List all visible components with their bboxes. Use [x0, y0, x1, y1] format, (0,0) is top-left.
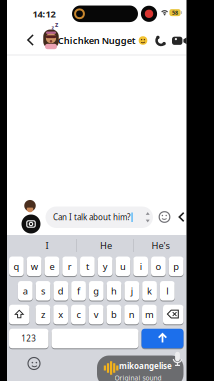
button[interactable]: He	[86, 236, 126, 254]
button[interactable]: x	[53, 304, 68, 325]
staticText: y	[103, 260, 108, 272]
button[interactable]	[27, 357, 40, 370]
staticText: g	[93, 285, 99, 297]
button[interactable]: c	[71, 304, 86, 325]
button[interactable]	[171, 352, 184, 367]
staticText: Can I talk about him?	[53, 212, 130, 222]
button[interactable]	[172, 33, 188, 49]
button[interactable]	[174, 210, 188, 224]
staticText: mikoangelise	[119, 361, 172, 371]
staticText: n	[129, 308, 135, 321]
staticText: r	[68, 260, 72, 272]
staticText: 58	[172, 9, 178, 16]
button[interactable]: q	[9, 256, 24, 277]
button[interactable]: y	[98, 256, 113, 277]
staticText: Chichken Nugget	[58, 34, 136, 47]
button[interactable]	[22, 215, 40, 233]
button[interactable]: He's	[140, 236, 180, 254]
button[interactable]: r	[62, 256, 77, 277]
staticText: z	[51, 24, 54, 31]
button[interactable]: o	[151, 256, 166, 277]
staticText: He's	[151, 239, 169, 252]
staticText: t	[86, 260, 89, 272]
staticText: u	[120, 260, 126, 272]
button[interactable]	[141, 328, 183, 349]
staticText: v	[94, 308, 99, 321]
button[interactable]: h	[107, 281, 121, 301]
button[interactable]	[158, 210, 171, 223]
staticText: f	[77, 285, 80, 297]
staticText: j	[131, 285, 133, 297]
button[interactable]: Chichken Nugget	[58, 32, 147, 48]
staticText: d	[58, 285, 64, 297]
button[interactable]: Can I talk about him?	[45, 206, 153, 228]
button[interactable]	[9, 304, 29, 325]
staticText: I	[45, 239, 48, 252]
button[interactable]: w	[27, 256, 42, 277]
staticText: a	[23, 285, 28, 297]
button[interactable]: j	[124, 281, 139, 301]
staticText: h	[111, 285, 117, 297]
staticText: l	[166, 285, 168, 297]
button[interactable]: f	[71, 281, 86, 301]
staticText: m	[145, 308, 154, 321]
button[interactable]: p	[169, 256, 184, 277]
button[interactable]: t	[80, 256, 95, 277]
staticText: i	[140, 260, 142, 272]
staticText: z	[41, 308, 45, 321]
button[interactable]: i	[133, 256, 148, 277]
button[interactable]	[42, 29, 60, 51]
staticText: x	[58, 308, 63, 321]
button[interactable]	[51, 328, 138, 349]
button[interactable]	[22, 32, 38, 48]
button[interactable]: k	[142, 281, 157, 301]
button[interactable]	[153, 32, 169, 48]
staticText: He	[100, 239, 112, 252]
staticText: e	[49, 260, 54, 272]
button[interactable]: 123	[9, 328, 48, 349]
button[interactable]: l	[160, 281, 175, 301]
staticText: 14:12	[32, 8, 55, 20]
staticText: 123	[21, 333, 36, 344]
button[interactable]: n	[124, 304, 139, 325]
staticText: b	[111, 308, 117, 321]
staticText: z	[55, 20, 58, 29]
staticText: p	[173, 260, 179, 272]
staticText: w	[31, 260, 38, 272]
button[interactable]: u	[115, 256, 130, 277]
button[interactable]	[163, 304, 183, 325]
button[interactable]: b	[106, 304, 121, 325]
button[interactable]: a	[18, 281, 33, 301]
button[interactable]: v	[89, 304, 104, 325]
button[interactable]: m	[142, 304, 157, 325]
button[interactable]: I	[27, 236, 67, 254]
staticText: k	[147, 285, 152, 297]
staticText: o	[155, 260, 161, 272]
staticText: Original sound	[114, 373, 161, 381]
staticText: s	[41, 285, 45, 297]
staticText: q	[13, 260, 19, 272]
button[interactable]: e	[44, 256, 59, 277]
button[interactable]: g	[89, 281, 104, 301]
button[interactable]: s	[36, 281, 50, 301]
staticText: c	[76, 308, 80, 321]
button[interactable]: z	[35, 304, 50, 325]
button[interactable]: d	[53, 281, 68, 301]
